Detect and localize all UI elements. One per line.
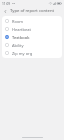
staticText: Heartbeat xyxy=(12,27,31,32)
button[interactable]: Ability xyxy=(2,41,62,49)
button[interactable]: Zip my org xyxy=(2,49,62,57)
staticText: Type of report content xyxy=(10,8,55,14)
staticText: Room xyxy=(12,19,24,24)
staticText: Textbook xyxy=(12,35,30,40)
staticText: 11:09 xyxy=(2,2,11,6)
staticText: Ability xyxy=(12,43,24,48)
staticText: Zip my org xyxy=(12,51,33,56)
button[interactable]: Textbook xyxy=(2,33,62,41)
button[interactable]: Back xyxy=(2,8,9,15)
button[interactable]: Room xyxy=(2,17,62,25)
button[interactable]: Heartbeat xyxy=(2,25,62,33)
